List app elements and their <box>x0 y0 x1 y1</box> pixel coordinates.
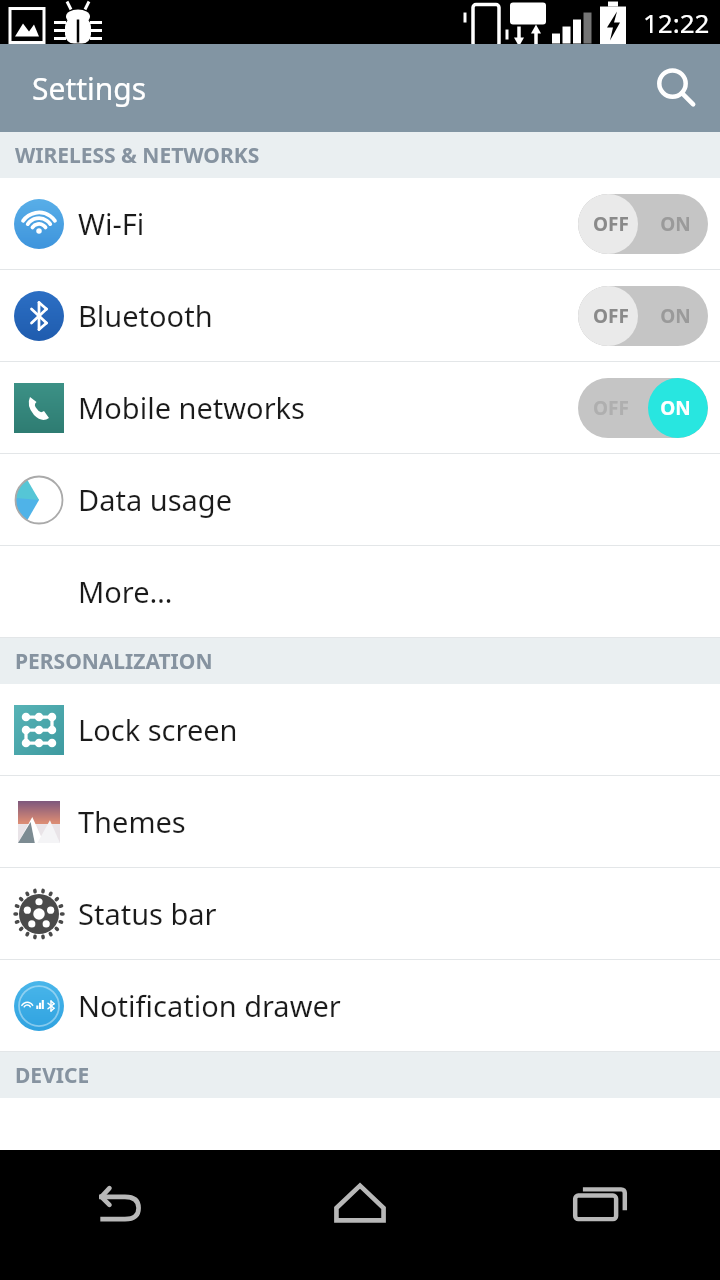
staticText: Bluetooth <box>78 296 578 335</box>
staticText: OFF <box>593 211 629 237</box>
staticText: Lock screen <box>78 710 720 749</box>
button[interactable]: Toggle on <box>578 378 708 438</box>
staticText: DEVICE <box>15 1061 90 1090</box>
staticText: PERSONALIZATION <box>15 647 213 676</box>
staticText: OFF <box>593 395 629 421</box>
button[interactable]: Home <box>240 1150 480 1280</box>
staticText: OFF <box>593 303 629 329</box>
staticText: WIRELESS & NETWORKS <box>15 141 260 170</box>
button[interactable]: Themes <box>0 776 720 868</box>
staticText: ON <box>660 395 691 421</box>
button[interactable]: Data usage <box>0 454 720 546</box>
button[interactable]: Notification drawer <box>0 960 720 1052</box>
button[interactable]: Toggle off <box>578 286 708 346</box>
staticText: ON <box>660 211 691 237</box>
staticText: 12:22 <box>643 5 710 40</box>
button[interactable]: Mobile networks <box>0 362 720 454</box>
button[interactable]: More… <box>0 546 720 638</box>
button[interactable]: Back <box>0 1150 240 1280</box>
button[interactable]: Bluetooth <box>0 270 720 362</box>
staticText: Settings <box>32 68 147 109</box>
button[interactable]: Toggle off <box>578 194 708 254</box>
button[interactable]: Search <box>632 44 720 132</box>
button[interactable]: Wi-Fi <box>0 178 720 270</box>
staticText: Notification drawer <box>78 986 720 1025</box>
staticText: Mobile networks <box>78 388 578 427</box>
staticText: Data usage <box>78 480 720 519</box>
staticText: Status bar <box>78 894 720 933</box>
button[interactable]: Status bar <box>0 868 720 960</box>
staticText: Wi-Fi <box>78 204 578 243</box>
staticText: More… <box>78 572 720 611</box>
button[interactable]: Recents <box>480 1150 720 1280</box>
staticText: Themes <box>78 802 720 841</box>
button[interactable]: Lock screen <box>0 684 720 776</box>
staticText: ON <box>660 303 691 329</box>
